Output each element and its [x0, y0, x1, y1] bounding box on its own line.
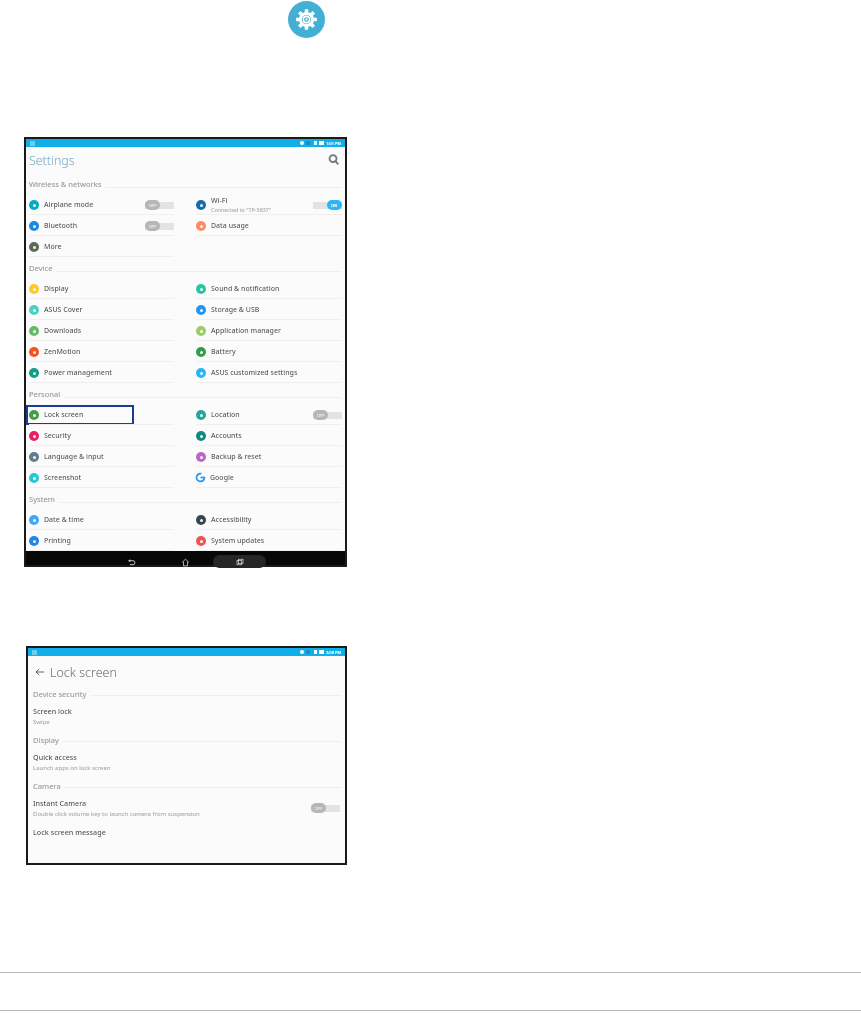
- staticText: Date & time: [44, 515, 84, 525]
- button[interactable]: Quick access: [28, 745, 345, 780]
- staticText: Wireless & networks: [29, 179, 102, 189]
- staticText: Google: [210, 473, 234, 483]
- staticText: Sound & notification: [211, 284, 280, 294]
- staticText: ON: [331, 203, 338, 208]
- staticText: Airplane mode: [44, 200, 94, 210]
- button[interactable]: ASUS Cover: [29, 299, 174, 320]
- staticText: Lock screen: [50, 664, 117, 681]
- staticText: Wi-Fi: [211, 196, 228, 206]
- button[interactable]: Instant Camera: [28, 791, 345, 820]
- staticText: Accessibility: [211, 515, 252, 525]
- button[interactable]: Lock screen: [29, 404, 174, 425]
- staticText: Device security: [33, 689, 87, 699]
- button[interactable]: More: [29, 236, 174, 257]
- staticText: OFF: [149, 224, 157, 229]
- button[interactable]: Accounts: [196, 425, 342, 446]
- staticText: ASUS Cover: [44, 305, 83, 315]
- button[interactable]: Location: [196, 404, 342, 425]
- button[interactable]: Date & time: [29, 509, 174, 530]
- staticText: Lock screen message: [33, 827, 106, 837]
- staticText: Application manager: [211, 326, 281, 336]
- staticText: Launch apps on lock screen: [33, 764, 111, 772]
- button[interactable]: Application manager: [196, 320, 342, 341]
- staticText: Settings: [29, 152, 75, 169]
- button[interactable]: Battery: [196, 341, 342, 362]
- staticText: Display: [44, 284, 69, 294]
- staticText: Security: [44, 431, 71, 441]
- staticText: Screen lock: [33, 706, 72, 716]
- button[interactable]: Storage & USB: [196, 299, 342, 320]
- staticText: Double click volume key to launch camera…: [33, 810, 200, 818]
- staticText: Storage & USB: [211, 305, 260, 315]
- button[interactable]: Sound & notification: [196, 278, 342, 299]
- staticText: 2:08 PM: [326, 650, 342, 655]
- staticText: Device: [29, 263, 53, 273]
- staticText: Printing: [44, 536, 71, 546]
- staticText: Battery: [211, 347, 236, 357]
- staticText: Accounts: [211, 431, 242, 441]
- staticText: ZenMotion: [44, 347, 81, 357]
- button[interactable]: Display: [29, 278, 174, 299]
- button[interactable]: Screenshot: [29, 467, 174, 488]
- button[interactable]: Back: [124, 555, 139, 569]
- button[interactable]: Home: [178, 555, 193, 569]
- staticText: System: [29, 494, 55, 504]
- staticText: Power management: [44, 368, 112, 378]
- button[interactable]: Search: [327, 153, 341, 167]
- button[interactable]: Wi-Fi: [196, 194, 342, 215]
- staticText: Screenshot: [44, 473, 82, 483]
- staticText: Camera: [33, 781, 61, 791]
- button[interactable]: Language & input: [29, 446, 174, 467]
- button[interactable]: Lock screen message: [28, 820, 345, 855]
- staticText: Quick access: [33, 752, 77, 762]
- button[interactable]: Printing: [29, 530, 174, 551]
- staticText: OFF: [317, 413, 325, 418]
- staticText: ASUS customized settings: [211, 368, 298, 378]
- button[interactable]: ZenMotion: [29, 341, 174, 362]
- button[interactable]: Screen lock: [28, 699, 345, 734]
- staticText: Location: [211, 410, 240, 420]
- button[interactable]: System updates: [196, 530, 342, 551]
- staticText: Display: [33, 735, 59, 745]
- staticText: More: [44, 242, 62, 252]
- staticText: 1:01 PM: [326, 141, 342, 146]
- button[interactable]: Security: [29, 425, 174, 446]
- staticText: OFF: [149, 203, 157, 208]
- staticText: Connected to "TP-5837": [211, 206, 272, 213]
- button[interactable]: Data usage: [196, 215, 342, 236]
- button[interactable]: Backup & reset: [196, 446, 342, 467]
- button[interactable]: Airplane mode: [29, 194, 174, 215]
- button[interactable]: ASUS customized settings: [196, 362, 342, 383]
- staticText: Lock screen: [44, 410, 84, 420]
- staticText: Language & input: [44, 452, 104, 462]
- button[interactable]: Bluetooth: [29, 215, 174, 236]
- staticText: OFF: [315, 806, 323, 811]
- button[interactable]: Back: [33, 665, 47, 679]
- button[interactable]: Downloads: [29, 320, 174, 341]
- staticText: Instant Camera: [33, 798, 87, 808]
- button[interactable]: Accessibility: [196, 509, 342, 530]
- staticText: Bluetooth: [44, 221, 78, 231]
- button[interactable]: Power management: [29, 362, 174, 383]
- staticText: Swipe: [33, 718, 50, 726]
- staticText: Backup & reset: [211, 452, 262, 462]
- staticText: Personal: [29, 389, 61, 399]
- button[interactable]: Settings: [288, 1, 325, 38]
- staticText: System updates: [211, 536, 265, 546]
- staticText: Downloads: [44, 326, 82, 336]
- button[interactable]: Recents: [213, 555, 266, 568]
- button[interactable]: Google: [196, 467, 342, 488]
- staticText: Data usage: [211, 221, 249, 231]
